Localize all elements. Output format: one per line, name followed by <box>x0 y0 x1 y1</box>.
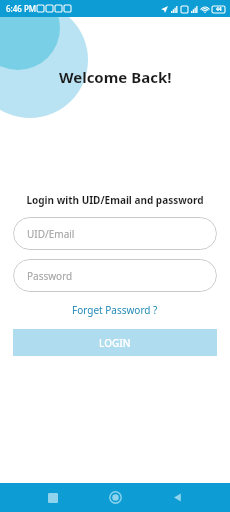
button[interactable]: Recents <box>22 483 84 512</box>
staticText: Forget Password ? <box>72 303 158 317</box>
staticText: Login with UID/Email and password <box>26 193 204 207</box>
staticText: Welcome Back! <box>59 67 172 87</box>
button[interactable]: LOGIN <box>13 329 217 356</box>
staticText: 6:46 PM <box>6 3 37 14</box>
staticText: UID/Email <box>27 227 75 241</box>
button[interactable]: Forget Password ? <box>66 300 164 320</box>
button[interactable]: UID/Email <box>13 217 217 250</box>
button[interactable]: Password <box>13 259 217 292</box>
button[interactable]: Back <box>146 483 208 512</box>
staticText: LOGIN <box>99 336 131 350</box>
staticText: Password <box>27 269 73 283</box>
staticText: 44 <box>216 6 222 13</box>
button[interactable]: Home <box>84 483 146 512</box>
